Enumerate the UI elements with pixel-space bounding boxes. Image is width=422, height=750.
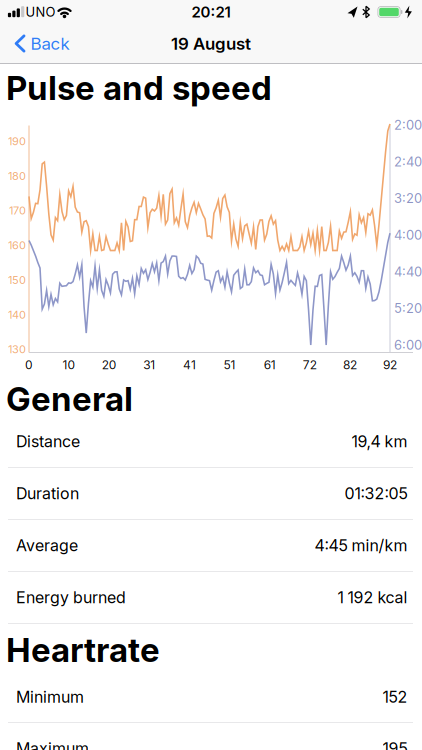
staticText: 20:21 (191, 3, 230, 21)
staticText: 72 (303, 358, 317, 372)
staticText: 31 (143, 358, 155, 372)
staticText: 19 August (171, 33, 251, 54)
staticText: 10 (63, 358, 76, 372)
staticText: 20 (102, 358, 117, 372)
staticText: Heartrate (6, 630, 160, 669)
button[interactable]: Back (14, 33, 69, 54)
staticText: Distance (16, 432, 80, 451)
staticText: 4:45 min/km (314, 536, 407, 555)
staticText: UNO (25, 4, 55, 20)
staticText: 180 (8, 169, 26, 182)
staticText: 170 (9, 204, 26, 217)
staticText: 0 (25, 358, 33, 372)
staticText: General (6, 379, 133, 418)
staticText: 2:40 (394, 154, 422, 169)
staticText: 1 192 kcal (337, 588, 407, 607)
staticText: 160 (8, 239, 26, 252)
staticText: 190 (8, 135, 26, 148)
staticText: 152 (382, 688, 407, 706)
staticText: 5:20 (394, 301, 422, 316)
staticText: 3:20 (394, 191, 422, 206)
staticText: 195 (382, 739, 407, 750)
staticText: 82 (343, 358, 357, 372)
staticText: Duration (16, 484, 79, 503)
staticText: Energy burned (16, 588, 126, 607)
staticText: 4:40 (394, 264, 422, 279)
staticText: Minimum (16, 688, 84, 706)
staticText: 92 (383, 358, 397, 372)
staticText: 6:00 (394, 337, 422, 353)
staticText: Average (16, 536, 78, 555)
staticText: 01:32:05 (344, 484, 407, 503)
staticText: 140 (8, 308, 26, 321)
staticText: 19,4 km (351, 432, 407, 451)
staticText: 41 (183, 358, 196, 372)
staticText: 61 (264, 358, 276, 372)
staticText: Back (30, 33, 69, 54)
staticText: 51 (224, 358, 236, 372)
staticText: 150 (8, 273, 26, 286)
staticText: 4:00 (394, 227, 422, 243)
staticText: 2:00 (394, 117, 422, 133)
staticText: 130 (8, 343, 26, 356)
staticText: Maximum (16, 739, 89, 750)
staticText: Pulse and speed (6, 68, 272, 107)
